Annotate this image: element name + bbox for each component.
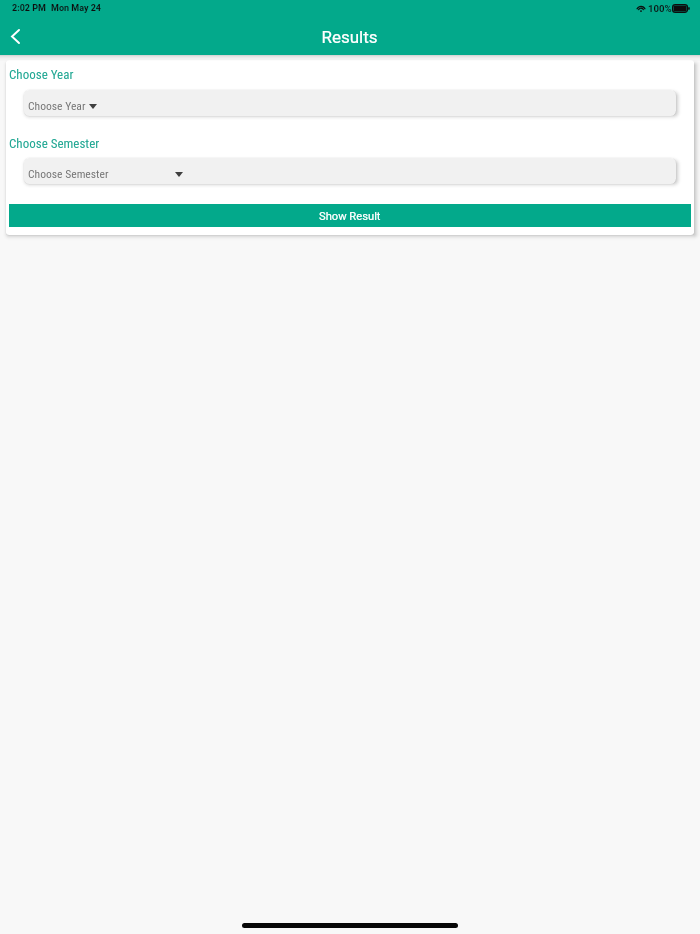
button[interactable]: Choose Semester <box>24 158 676 184</box>
staticText: Mon May 24 <box>51 3 101 14</box>
staticText: 100% <box>648 3 672 14</box>
staticText: Show Result <box>319 210 381 223</box>
staticText: 2:02 PM <box>12 3 46 14</box>
button[interactable]: Back <box>0 20 34 54</box>
staticText: Choose Semester <box>9 136 100 151</box>
button[interactable]: Show Result <box>9 204 691 227</box>
staticText: Choose Year <box>9 67 74 82</box>
staticText: Choose Semester <box>28 167 109 181</box>
button[interactable]: Choose Year <box>24 90 676 116</box>
staticText: Results <box>321 27 378 47</box>
staticText: Choose Year <box>28 99 86 113</box>
